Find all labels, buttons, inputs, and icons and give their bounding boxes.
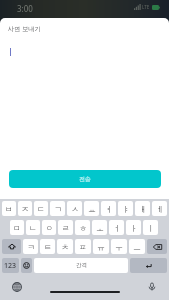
button[interactable]: 간격: [34, 258, 128, 273]
button[interactable]: 전송: [9, 170, 161, 188]
staticText: ㅡ: [133, 242, 141, 252]
staticText: ㅔ: [156, 204, 164, 214]
button[interactable]: ㅠ: [93, 239, 109, 254]
staticText: ㄷ: [37, 204, 45, 214]
button[interactable]: Shift: [2, 239, 21, 254]
staticText: ㅠ: [97, 242, 105, 252]
button[interactable]: ㅡ: [129, 239, 145, 254]
button[interactable]: ㅎ: [75, 220, 90, 235]
button[interactable]: Emoji: [21, 258, 32, 273]
staticText: ㅈ: [21, 204, 29, 214]
staticText: ㅍ: [79, 242, 87, 252]
staticText: ㅑ: [122, 204, 130, 214]
button[interactable]: ㄹ: [58, 220, 73, 235]
staticText: ㅌ: [44, 242, 52, 252]
staticText: ㅗ: [96, 223, 104, 233]
button[interactable]: ㄴ: [26, 220, 40, 235]
staticText: 사연 보내기: [8, 24, 41, 32]
staticText: ㅂ: [5, 204, 13, 214]
staticText: ㅣ: [147, 223, 155, 233]
button[interactable]: ㅈ: [18, 201, 32, 216]
button[interactable]: ㅌ: [40, 239, 55, 254]
staticText: ㅓ: [113, 223, 121, 233]
button[interactable]: ㄷ: [34, 201, 48, 216]
staticText: ㅇ: [45, 223, 53, 233]
button[interactable]: ㅔ: [152, 201, 167, 216]
staticText: ㄱ: [54, 204, 62, 214]
staticText: 전송: [79, 175, 91, 183]
button[interactable]: ㅑ: [118, 201, 133, 216]
staticText: ㅐ: [139, 204, 147, 214]
staticText: ㅏ: [130, 223, 138, 233]
button[interactable]: ㅅ: [67, 201, 82, 216]
staticText: ㅅ: [71, 204, 79, 214]
button[interactable]: Voice input: [147, 282, 157, 292]
staticText: 123: [4, 261, 17, 271]
staticText: 3:00: [17, 3, 33, 14]
staticText: 간격: [76, 262, 87, 269]
button[interactable]: Change keyboard language: [12, 282, 22, 292]
button[interactable]: ㅁ: [10, 220, 24, 235]
button[interactable]: ㅕ: [101, 201, 116, 216]
button[interactable]: ㅣ: [143, 220, 158, 235]
staticText: ㅕ: [105, 204, 113, 214]
button[interactable]: ㅂ: [2, 201, 16, 216]
button[interactable]: Backspace: [147, 239, 167, 254]
staticText: ㅁ: [13, 223, 21, 233]
staticText: ㅊ: [61, 242, 69, 252]
button[interactable]: ㅏ: [126, 220, 141, 235]
staticText: ㅛ: [88, 204, 96, 214]
button[interactable]: ㅊ: [57, 239, 73, 254]
button[interactable]: ㅗ: [92, 220, 107, 235]
button[interactable]: ㄱ: [50, 201, 65, 216]
button[interactable]: ㅓ: [109, 220, 124, 235]
button[interactable]: ㅋ: [23, 239, 38, 254]
button[interactable]: ㅍ: [75, 239, 91, 254]
staticText: ㅋ: [27, 242, 35, 252]
button[interactable]: ㅛ: [84, 201, 99, 216]
staticText: LTE: [142, 4, 150, 10]
staticText: ㄹ: [62, 223, 70, 233]
staticText: ㅎ: [79, 223, 87, 233]
button[interactable]: Numbers and symbols: [2, 258, 19, 273]
staticText: ㄴ: [29, 223, 37, 233]
button[interactable]: ㅜ: [111, 239, 127, 254]
button[interactable]: ㅐ: [135, 201, 150, 216]
staticText: ㅜ: [115, 242, 123, 252]
button[interactable]: ㅇ: [42, 220, 56, 235]
button[interactable]: Enter: [130, 258, 167, 273]
